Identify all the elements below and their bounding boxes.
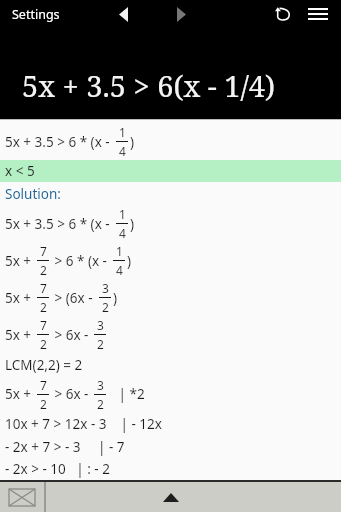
staticText: x < 5 — [5, 162, 35, 180]
button[interactable]: Settings — [12, 6, 60, 23]
staticText: 2 — [97, 336, 104, 352]
staticText: 4 — [119, 143, 126, 159]
staticText: 5x + — [5, 385, 35, 403]
staticText: | *2 — [108, 385, 145, 403]
staticText: 4 — [119, 225, 126, 241]
button[interactable]: Next — [164, 0, 198, 28]
staticText: > 6x - — [51, 326, 92, 344]
button[interactable]: Previous — [106, 0, 140, 28]
staticText: ) — [130, 215, 135, 233]
button[interactable]: x < 5 — [0, 160, 341, 182]
staticText: - 2x + 7 > - 3 | - 7 — [5, 438, 125, 456]
staticText: 4 — [116, 262, 123, 278]
staticText: 5x + — [5, 289, 35, 307]
staticText: 3 — [102, 280, 109, 296]
staticText: > 6 * (x - — [51, 252, 111, 270]
staticText: 7 — [40, 317, 47, 333]
staticText: 5x + 3.5 > 6 * (x - — [5, 215, 114, 233]
staticText: 10x + 7 > 12x - 3 | - 12x — [5, 415, 162, 433]
staticText: 7 — [40, 280, 47, 296]
staticText: 2 — [97, 396, 104, 412]
staticText: ) — [113, 289, 118, 307]
staticText: 2 — [40, 336, 47, 352]
staticText: 7 — [40, 377, 47, 393]
button[interactable]: Undo — [267, 0, 297, 28]
staticText: ) — [130, 133, 135, 151]
button[interactable]: Expand — [151, 483, 191, 511]
staticText: 5x + — [5, 326, 35, 344]
staticText: 5x + 3.5 > 6 * (x - — [5, 133, 114, 151]
staticText: 1 — [116, 243, 123, 259]
button[interactable]: Mail — [0, 482, 44, 512]
staticText: 1 — [119, 206, 126, 222]
staticText: 2 — [40, 396, 47, 412]
staticText: Settings — [12, 6, 60, 23]
staticText: 2 — [40, 262, 47, 278]
staticText: - 2x > - 10 | : - 2 — [5, 460, 110, 478]
staticText: 7 — [40, 243, 47, 259]
staticText: > (6x - — [51, 289, 97, 307]
staticText: 1 — [119, 124, 126, 140]
staticText: 5x + 3.5 > 6(x - 1/4) — [22, 66, 276, 105]
staticText: 3 — [97, 377, 104, 393]
staticText: > 6x - — [51, 385, 92, 403]
staticText: 2 — [102, 299, 109, 315]
staticText: 5x + — [5, 252, 35, 270]
button[interactable]: Menu — [301, 0, 335, 28]
staticText: 2 — [40, 299, 47, 315]
staticText: ) — [127, 252, 132, 270]
staticText: Solution: — [5, 185, 61, 203]
staticText: LCM(2,2) = 2 — [5, 356, 83, 374]
staticText: 3 — [97, 317, 104, 333]
